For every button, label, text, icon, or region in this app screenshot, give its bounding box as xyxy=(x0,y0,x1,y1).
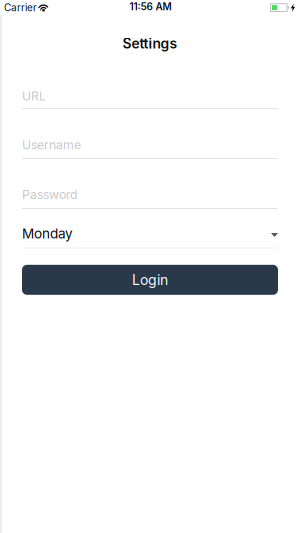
staticText: URL xyxy=(22,89,46,103)
staticText: 11:56 AM xyxy=(129,0,171,13)
staticText: Login xyxy=(132,271,168,288)
staticText: Carrier xyxy=(4,1,37,14)
staticText: Username xyxy=(22,137,81,152)
button[interactable]: Login xyxy=(22,265,278,295)
staticText: Settings xyxy=(122,35,177,52)
staticText: Password xyxy=(22,187,78,202)
button[interactable]: Monday xyxy=(22,225,278,242)
staticText: Monday xyxy=(22,225,73,242)
